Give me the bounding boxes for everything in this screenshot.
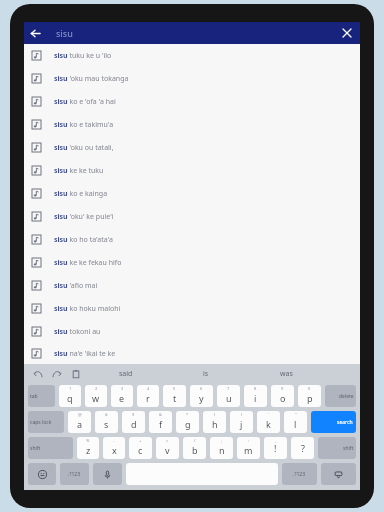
staticText: 9	[281, 386, 284, 391]
button[interactable]: Clear search	[336, 22, 358, 44]
button[interactable]: shift	[318, 437, 356, 459]
staticText: v	[165, 444, 170, 456]
button[interactable]: %	[77, 437, 99, 459]
staticText: sisu ko e 'ofa 'a hai	[54, 97, 116, 107]
staticText: sisu 'oku ou tatali,	[54, 143, 114, 153]
staticText: sisu 'afio mai	[54, 281, 98, 291]
button[interactable]: :	[237, 437, 260, 459]
button[interactable]: &	[149, 411, 172, 433]
button[interactable]: /	[183, 437, 206, 459]
button[interactable]: sisu ko e kainga	[24, 182, 360, 205]
staticText: &	[159, 412, 162, 417]
button[interactable]: +	[129, 437, 152, 459]
button[interactable]: sisu tokoni au	[24, 320, 360, 343]
staticText: 6	[200, 386, 203, 391]
staticText: r	[146, 392, 150, 404]
button[interactable]: ;	[210, 437, 233, 459]
staticText: '	[268, 412, 269, 417]
staticText: !	[274, 442, 277, 454]
staticText: i	[254, 392, 257, 404]
staticText: u	[226, 392, 232, 404]
button[interactable]: (	[203, 411, 226, 433]
button[interactable]: "	[284, 411, 307, 433]
staticText: b	[192, 444, 198, 456]
staticText: =	[166, 438, 169, 443]
staticText: h	[212, 418, 218, 430]
staticText: ?	[301, 442, 305, 454]
button[interactable]: Redo	[47, 364, 66, 383]
staticText: s	[104, 418, 109, 430]
button[interactable]: Voice input	[93, 463, 122, 485]
staticText: x	[112, 444, 117, 456]
button[interactable]: said	[85, 364, 166, 383]
button[interactable]: tab	[28, 385, 55, 407]
staticText: .	[302, 438, 304, 443]
button[interactable]: Undo	[28, 364, 47, 383]
button[interactable]: ,	[264, 437, 287, 459]
button[interactable]: caps lock	[28, 411, 64, 433]
button[interactable]: =	[156, 437, 179, 459]
button[interactable]: shift	[28, 437, 73, 459]
button[interactable]: )	[230, 411, 253, 433]
staticText: a	[77, 418, 83, 430]
button[interactable]: 0	[298, 385, 321, 407]
button[interactable]: .	[291, 437, 314, 459]
staticText: 8	[254, 386, 257, 391]
button[interactable]: $	[122, 411, 145, 433]
staticText: -	[113, 438, 115, 443]
button[interactable]: Clipboard	[66, 364, 85, 383]
staticText: y	[199, 392, 204, 404]
staticText: +	[139, 438, 142, 443]
button[interactable]: Hide keyboard	[321, 463, 356, 485]
staticText: k	[266, 418, 271, 430]
button[interactable]: sisu 'oku' ke pule'i	[24, 205, 360, 228]
button[interactable]: 7	[217, 385, 240, 407]
staticText: sisu tokoni au	[54, 327, 101, 337]
button[interactable]: 1	[59, 385, 81, 407]
staticText: sisu tuku ke u 'ilo	[54, 51, 112, 61]
staticText: 5	[173, 386, 176, 391]
button[interactable]: Back	[24, 22, 46, 44]
button[interactable]: sisu ke ke fekau hifo	[24, 251, 360, 274]
button[interactable]: Emoji	[28, 463, 56, 485]
staticText: w	[92, 392, 100, 404]
button[interactable]: @	[68, 411, 91, 433]
button[interactable]: sisu 'oku ou tatali,	[24, 136, 360, 159]
staticText: m	[244, 444, 253, 456]
button[interactable]: sisu ko ho ta'ata'a	[24, 228, 360, 251]
button[interactable]: .?123	[60, 463, 89, 485]
staticText: caps lock	[30, 419, 52, 426]
staticText: f	[159, 418, 163, 430]
button[interactable]: *	[176, 411, 199, 433]
button[interactable]: '	[257, 411, 280, 433]
button[interactable]: sisu ke ke tuku	[24, 159, 360, 182]
button[interactable]: 8	[244, 385, 267, 407]
staticText: sisu ke ke fekau hifo	[54, 258, 122, 268]
button[interactable]: is	[166, 364, 246, 383]
button[interactable]: sisu ko e 'ofa 'a hai	[24, 90, 360, 113]
button[interactable]: 4	[137, 385, 159, 407]
button[interactable]: -	[103, 437, 125, 459]
button[interactable]: was	[246, 364, 326, 383]
staticText: (	[214, 412, 216, 417]
button[interactable]: sisu na'e 'ikai te ke	[24, 343, 360, 364]
button[interactable]: sisu 'oku mau tokanga	[24, 67, 360, 90]
button[interactable]: sisu 'afio mai	[24, 274, 360, 297]
button[interactable]: 2	[85, 385, 107, 407]
staticText: sisu 'oku' ke pule'i	[54, 212, 114, 222]
button[interactable]: 5	[163, 385, 186, 407]
button[interactable]: sisu ko hoku malohi	[24, 297, 360, 320]
button[interactable]: 9	[271, 385, 294, 407]
button[interactable]: .?123	[282, 463, 317, 485]
button[interactable]: sisu tuku ke u 'ilo	[24, 44, 360, 67]
staticText: 1	[69, 386, 72, 391]
button[interactable]: delete	[325, 385, 356, 407]
staticText: 7	[227, 386, 230, 391]
button[interactable]: sisu ko e takimu'a	[24, 113, 360, 136]
staticText: g	[185, 418, 191, 430]
button[interactable]: #	[95, 411, 118, 433]
button[interactable]: 6	[190, 385, 213, 407]
button[interactable]: 3	[111, 385, 133, 407]
button[interactable]: search	[311, 411, 356, 433]
